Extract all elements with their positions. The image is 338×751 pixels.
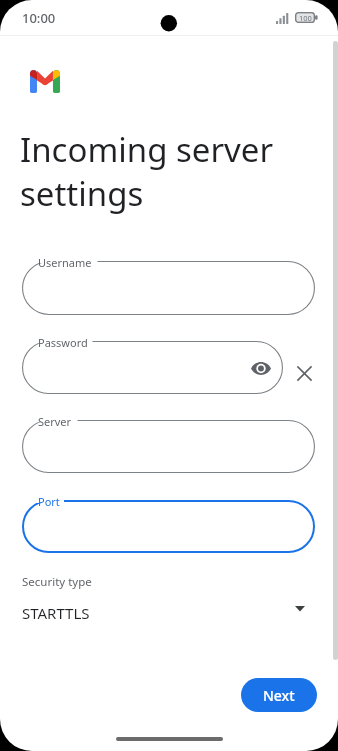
button[interactable]: Port <box>22 500 315 553</box>
button[interactable]: Username <box>22 261 315 315</box>
staticText: Port <box>38 494 60 509</box>
staticText: 100 <box>299 13 312 22</box>
staticText: Password <box>38 335 88 350</box>
staticText: Server <box>38 414 72 429</box>
staticText: Security type <box>22 574 92 590</box>
staticText: STARTTLS <box>22 603 90 623</box>
staticText: 10:00 <box>22 9 56 27</box>
staticText: Username <box>38 255 92 270</box>
button[interactable]: Clear password <box>291 360 318 387</box>
button[interactable]: STARTTLS <box>0 599 338 627</box>
button[interactable]: Show password <box>248 355 274 381</box>
staticText: Next <box>263 686 295 705</box>
button[interactable]: Server <box>22 420 315 473</box>
button[interactable]: Next <box>241 678 317 712</box>
staticText: Incoming server settings <box>20 127 274 215</box>
button[interactable]: Password <box>22 341 283 394</box>
